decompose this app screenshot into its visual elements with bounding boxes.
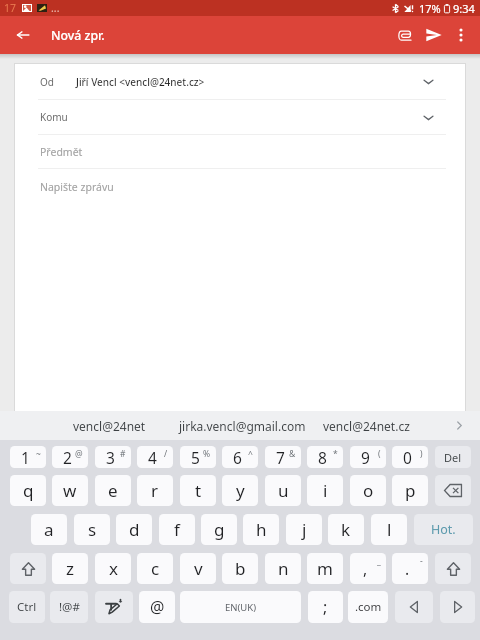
staticText: vencl@24net <box>73 418 146 434</box>
button[interactable]: Del <box>435 446 471 468</box>
button[interactable]: 2 <box>52 446 88 468</box>
staticText: ; <box>323 596 328 618</box>
button[interactable]: Napište zprávu <box>15 169 465 204</box>
button[interactable]: More suggestions <box>446 411 472 440</box>
button[interactable]: u <box>265 475 301 506</box>
button[interactable]: Backspace <box>435 475 471 506</box>
staticText: Napište zprávu <box>40 180 114 194</box>
button[interactable]: s <box>74 514 110 545</box>
button[interactable]: b <box>222 553 258 584</box>
button[interactable]: 8 <box>307 446 343 468</box>
staticText: 9:34 <box>453 1 475 16</box>
staticText: 3 <box>106 447 115 468</box>
button[interactable]: k <box>328 514 364 545</box>
staticText: ^ <box>248 448 253 460</box>
button[interactable]: 7 <box>265 446 301 468</box>
staticText: 17 <box>4 1 17 15</box>
button[interactable]: Shift <box>435 553 471 584</box>
button[interactable]: Hot. <box>414 514 473 545</box>
button[interactable]: v <box>180 553 216 584</box>
staticText: g <box>214 518 225 541</box>
button[interactable]: vencl@24net.cz <box>323 411 410 440</box>
staticText: 17% <box>419 1 441 16</box>
button[interactable]: a <box>31 514 67 545</box>
staticText: m <box>317 557 333 580</box>
staticText: q <box>23 479 34 502</box>
button[interactable]: Attach file <box>389 16 419 54</box>
staticText: e <box>108 479 118 502</box>
button[interactable]: . <box>392 553 428 584</box>
button[interactable]: n <box>265 553 301 584</box>
button[interactable]: 0 <box>392 446 428 468</box>
staticText: 1 <box>21 447 30 468</box>
staticText: @ <box>150 596 165 618</box>
button[interactable]: 9 <box>350 446 386 468</box>
staticText: * <box>333 448 338 460</box>
staticText: i <box>323 479 328 502</box>
button[interactable]: Předmět <box>15 135 465 168</box>
staticText: Nová zpr. <box>51 27 105 44</box>
button[interactable]: d <box>116 514 152 545</box>
staticText: f <box>174 518 180 541</box>
button[interactable]: w <box>52 475 88 506</box>
button[interactable]: ; <box>308 591 343 623</box>
staticText: k <box>341 518 351 541</box>
button[interactable]: Send <box>419 16 448 54</box>
button[interactable]: .com <box>348 591 388 623</box>
staticText: Jiří Vencl <vencl@24net.cz> <box>76 75 205 89</box>
staticText: ( <box>378 448 381 460</box>
staticText: - <box>420 555 423 567</box>
staticText: jirka.vencl@gmail.com <box>179 418 306 434</box>
button[interactable]: EN(UK) <box>180 591 301 623</box>
button[interactable]: e <box>95 475 131 506</box>
button[interactable]: Ctrl <box>9 591 45 623</box>
button[interactable]: , <box>350 553 386 584</box>
staticText: t <box>195 479 202 502</box>
button[interactable]: Shift <box>10 553 46 584</box>
button[interactable]: vencl@24net <box>73 411 146 440</box>
button[interactable]: @ <box>139 591 175 623</box>
staticText: a <box>44 518 54 541</box>
staticText: Předmět <box>40 145 83 159</box>
button[interactable]: 3 <box>95 446 131 468</box>
button[interactable]: j <box>286 514 322 545</box>
staticText: c <box>151 557 160 580</box>
staticText: ... <box>51 1 60 15</box>
button[interactable]: f <box>159 514 195 545</box>
button[interactable]: g <box>201 514 237 545</box>
button[interactable]: o <box>350 475 386 506</box>
button[interactable]: t <box>180 475 216 506</box>
staticText: Komu <box>40 110 68 124</box>
button[interactable]: 1 <box>10 446 46 468</box>
button[interactable]: More options <box>448 16 474 54</box>
button[interactable]: Komu <box>15 100 465 134</box>
staticText: v <box>194 557 203 580</box>
staticText: l <box>387 518 392 541</box>
button[interactable]: l <box>371 514 407 545</box>
button[interactable]: r <box>137 475 173 506</box>
staticText: 9 <box>361 447 370 468</box>
button[interactable]: x <box>95 553 131 584</box>
button[interactable]: y <box>222 475 258 506</box>
button[interactable]: 4 <box>137 446 173 468</box>
staticText: # <box>120 448 126 460</box>
staticText: 0 <box>403 447 412 468</box>
button[interactable]: z <box>52 553 88 584</box>
staticText: o <box>363 479 374 502</box>
button[interactable]: 5 <box>180 446 216 468</box>
button[interactable]: jirka.vencl@gmail.com <box>179 411 306 440</box>
button[interactable]: Handwriting <box>95 591 133 623</box>
button[interactable]: p <box>392 475 428 506</box>
button[interactable]: h <box>243 514 279 545</box>
button[interactable]: Od <box>15 64 465 99</box>
staticText: y <box>236 479 245 502</box>
button[interactable]: m <box>307 553 343 584</box>
button[interactable]: Back <box>0 16 46 54</box>
button[interactable]: c <box>137 553 173 584</box>
button[interactable]: !@# <box>50 591 88 623</box>
button[interactable]: Left <box>395 591 433 623</box>
button[interactable]: Right <box>440 591 475 623</box>
button[interactable]: i <box>307 475 343 506</box>
button[interactable]: 6 <box>222 446 258 468</box>
button[interactable]: q <box>10 475 46 506</box>
